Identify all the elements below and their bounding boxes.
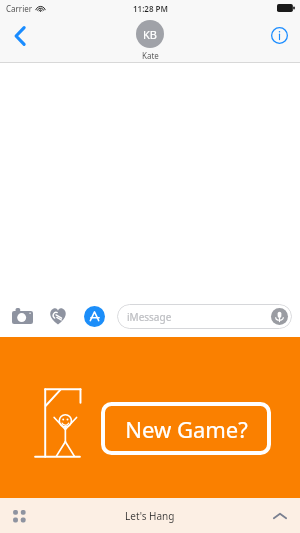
button[interactable]: Details <box>262 18 296 52</box>
button[interactable]: Apps <box>4 500 36 532</box>
button[interactable]: Back <box>2 18 38 54</box>
button[interactable]: Digital Touch <box>44 302 72 330</box>
button[interactable]: KB <box>136 20 164 61</box>
staticText: Carrier <box>6 3 33 14</box>
button[interactable]: Camera <box>8 302 36 330</box>
button[interactable]: Expand <box>264 500 296 532</box>
staticText: Let's Hang <box>125 509 175 523</box>
staticText: KB <box>143 27 157 42</box>
staticText: New Game? <box>125 414 248 444</box>
staticText: 11:28 PM <box>133 3 168 14</box>
button[interactable]: App Store <box>80 302 108 330</box>
button[interactable]: iMessage <box>117 304 292 329</box>
button[interactable]: New Game? <box>101 402 271 455</box>
staticText: Kate <box>142 50 159 61</box>
staticText: iMessage <box>127 310 172 324</box>
button[interactable]: Record audio <box>270 307 289 326</box>
